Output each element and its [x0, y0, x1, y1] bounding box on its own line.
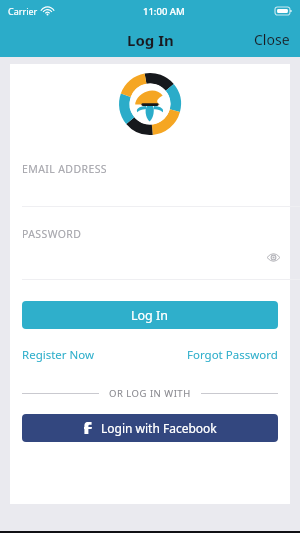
button[interactable]: Close	[244, 24, 300, 55]
button[interactable]: Login with Facebook	[22, 414, 278, 442]
button[interactable]: Register Now	[22, 343, 95, 367]
staticText: Log In	[131, 307, 169, 324]
staticText: OR LOG IN WITH	[109, 387, 191, 400]
button[interactable]: Show password	[257, 243, 290, 272]
staticText: 11:00 AM	[143, 5, 185, 18]
button[interactable]: EMAIL ADDRESS	[10, 144, 290, 206]
staticText: Close	[254, 30, 290, 49]
staticText: Register Now	[22, 347, 95, 363]
staticText: EMAIL ADDRESS	[22, 162, 107, 176]
button[interactable]: Log In	[127, 30, 174, 50]
button[interactable]: Forgot Password	[187, 343, 278, 367]
staticText: PASSWORD	[22, 227, 82, 241]
staticText: Login with Facebook	[101, 420, 217, 436]
button[interactable]: PASSWORD	[10, 207, 290, 279]
staticText: Carrier	[8, 5, 38, 17]
staticText: Forgot Password	[187, 347, 278, 363]
button[interactable]: Log In	[22, 301, 278, 329]
